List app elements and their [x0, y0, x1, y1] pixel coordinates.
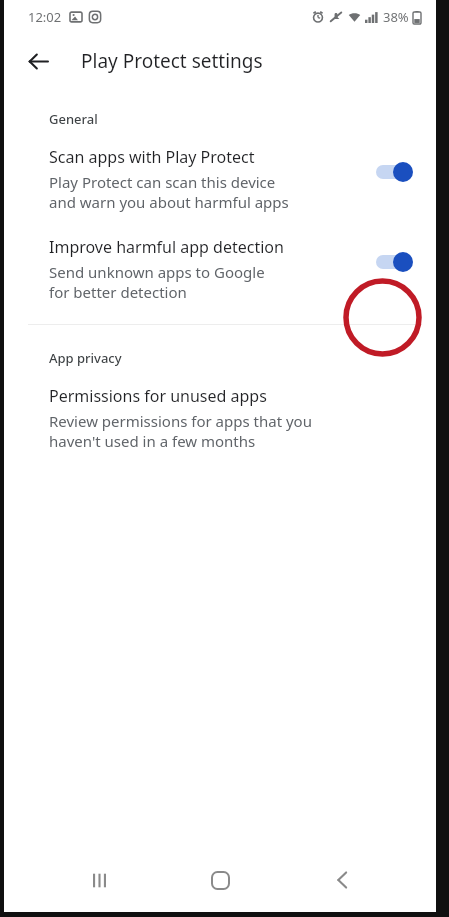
staticText: 38% — [383, 8, 409, 26]
button[interactable]: Toggle — [374, 250, 418, 274]
button[interactable]: Scan apps with Play Protect — [4, 146, 436, 212]
staticText: App privacy — [49, 349, 122, 367]
staticText: and warn you about harmful apps — [49, 192, 289, 212]
button[interactable]: Recents — [72, 853, 126, 907]
staticText: General — [49, 110, 98, 128]
staticText: Improve harmful app detection — [49, 236, 284, 258]
staticText: Play Protect settings — [81, 48, 263, 74]
staticText: Permissions for unused apps — [49, 385, 267, 407]
staticText: Send unknown apps to Google — [49, 262, 265, 282]
button[interactable]: Back — [315, 853, 369, 907]
staticText: Review permissions for apps that you — [49, 411, 312, 431]
button[interactable]: Toggle — [374, 160, 418, 184]
staticText: for better detection — [49, 282, 187, 302]
staticText: Scan apps with Play Protect — [49, 146, 255, 168]
staticText: haven't used in a few months — [49, 431, 256, 451]
staticText: Play Protect can scan this device — [49, 172, 276, 192]
staticText: 12:02 — [28, 8, 62, 26]
button[interactable]: Permissions for unused apps — [4, 385, 436, 451]
button[interactable]: Back — [16, 39, 60, 83]
button[interactable]: Improve harmful app detection — [4, 236, 436, 302]
button[interactable]: Home — [193, 853, 247, 907]
